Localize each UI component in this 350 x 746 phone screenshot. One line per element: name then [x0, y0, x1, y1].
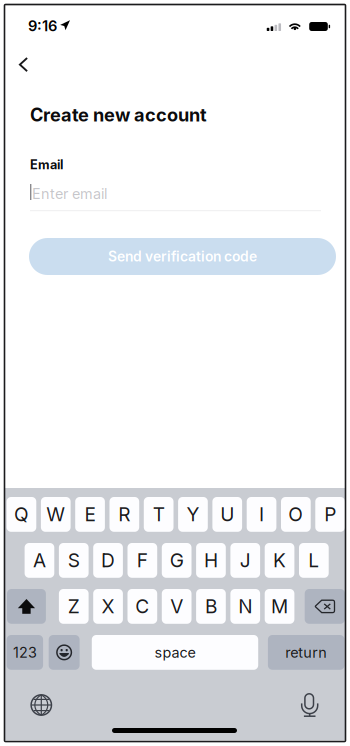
- button[interactable]: J: [230, 543, 260, 578]
- button[interactable]: 123: [7, 635, 43, 670]
- button[interactable]: Q: [7, 497, 36, 532]
- staticText: V: [170, 595, 183, 618]
- staticText: S: [68, 549, 80, 572]
- staticText: O: [288, 503, 303, 526]
- button[interactable]: I: [247, 497, 276, 532]
- button[interactable]: P: [315, 497, 345, 532]
- button[interactable]: U: [212, 497, 242, 532]
- button[interactable]: O: [281, 497, 311, 532]
- staticText: R: [118, 503, 130, 526]
- staticText: H: [204, 549, 218, 572]
- button[interactable]: Z: [59, 589, 89, 624]
- staticText: D: [101, 549, 115, 572]
- button[interactable]: Send verification code: [29, 238, 336, 275]
- staticText: Send verification code: [108, 248, 257, 265]
- button[interactable]: K: [265, 543, 294, 578]
- staticText: 9:16: [28, 17, 57, 35]
- staticText: U: [220, 503, 234, 526]
- staticText: N: [238, 595, 252, 618]
- button[interactable]: D: [93, 543, 123, 578]
- button[interactable]: Delete: [305, 589, 345, 624]
- staticText: space: [154, 644, 195, 661]
- staticText: Z: [68, 595, 80, 618]
- button[interactable]: H: [196, 543, 226, 578]
- button[interactable]: R: [109, 497, 139, 532]
- staticText: M: [271, 595, 288, 618]
- staticText: Q: [14, 503, 29, 526]
- button[interactable]: E: [75, 497, 105, 532]
- staticText: E: [84, 503, 95, 526]
- staticText: Create new account: [30, 104, 207, 126]
- button[interactable]: T: [144, 497, 173, 532]
- staticText: A: [33, 549, 46, 572]
- button[interactable]: W: [41, 497, 71, 532]
- staticText: Enter email: [32, 185, 107, 202]
- button[interactable]: L: [299, 543, 329, 578]
- button[interactable]: S: [59, 543, 89, 578]
- button[interactable]: Shift: [7, 589, 46, 624]
- staticText: F: [137, 549, 148, 572]
- button[interactable]: B: [196, 589, 226, 624]
- staticText: B: [205, 595, 217, 618]
- staticText: W: [46, 503, 65, 526]
- staticText: C: [135, 595, 149, 618]
- button[interactable]: G: [162, 543, 191, 578]
- button[interactable]: return: [268, 635, 344, 670]
- staticText: J: [240, 549, 251, 572]
- button[interactable]: Dictation: [301, 693, 319, 717]
- button[interactable]: Back: [10, 52, 36, 78]
- button[interactable]: M: [265, 589, 294, 624]
- staticText: Email: [30, 157, 63, 172]
- button[interactable]: F: [127, 543, 157, 578]
- button[interactable]: space: [92, 635, 258, 670]
- staticText: 123: [13, 644, 37, 661]
- button[interactable]: Emoji: [49, 635, 80, 670]
- staticText: I: [259, 503, 264, 526]
- button[interactable]: Y: [178, 497, 208, 532]
- staticText: L: [308, 549, 319, 572]
- button[interactable]: C: [127, 589, 157, 624]
- staticText: G: [170, 549, 184, 572]
- staticText: Y: [186, 503, 199, 526]
- staticText: T: [153, 503, 165, 526]
- staticText: X: [101, 595, 114, 618]
- button[interactable]: N: [230, 589, 260, 624]
- staticText: return: [285, 644, 327, 661]
- button[interactable]: X: [93, 589, 123, 624]
- staticText: P: [324, 503, 336, 526]
- button[interactable]: A: [25, 543, 54, 578]
- button[interactable]: V: [162, 589, 191, 624]
- button[interactable]: Switch keyboard: [30, 694, 52, 716]
- staticText: K: [273, 549, 286, 572]
